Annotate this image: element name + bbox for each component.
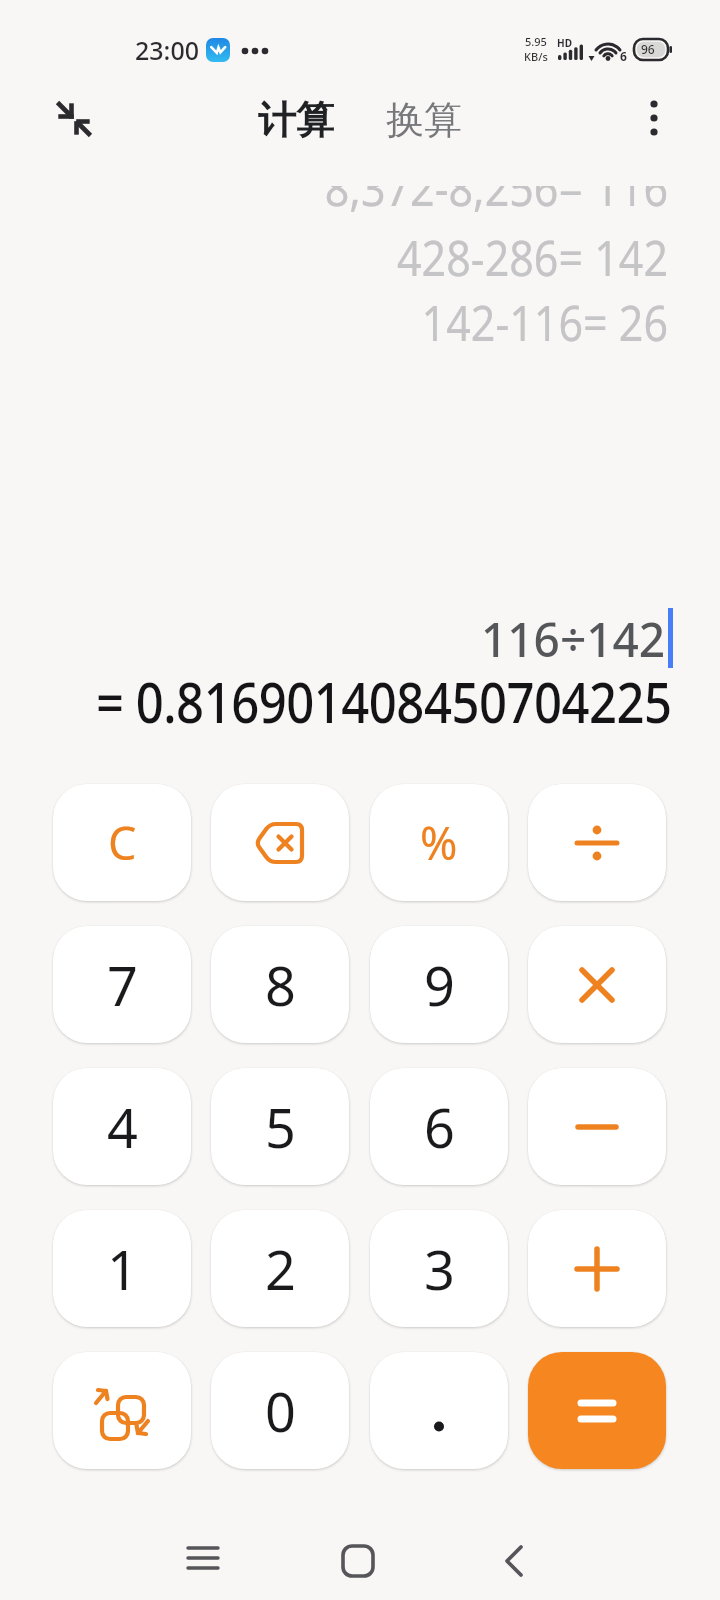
- button[interactable]: [528, 784, 666, 901]
- staticText: 142-116= 26: [421, 289, 668, 356]
- button[interactable]: 计算: [258, 96, 334, 140]
- staticText: 7: [107, 948, 138, 1022]
- button[interactable]: 9: [370, 926, 508, 1043]
- staticText: 428-286= 142: [397, 224, 668, 291]
- staticText: 1: [107, 1232, 138, 1306]
- button[interactable]: 8: [211, 926, 349, 1043]
- button[interactable]: [528, 926, 666, 1043]
- button[interactable]: 6: [370, 1068, 508, 1185]
- button[interactable]: [211, 784, 349, 901]
- button[interactable]: [338, 1542, 378, 1582]
- staticText: 116÷142: [481, 606, 666, 671]
- button[interactable]: [53, 1352, 191, 1469]
- staticText: 4: [107, 1090, 138, 1164]
- button[interactable]: [528, 1068, 666, 1185]
- staticText: %: [420, 812, 458, 873]
- staticText: 23:00: [135, 33, 200, 67]
- button[interactable]: [495, 1541, 535, 1581]
- button[interactable]: 1: [53, 1210, 191, 1327]
- staticText: 8: [265, 948, 296, 1022]
- button[interactable]: 4: [53, 1068, 191, 1185]
- staticText: 计算: [258, 96, 334, 140]
- button[interactable]: 换算: [386, 96, 462, 140]
- staticText: HD: [557, 36, 572, 50]
- staticText: 3: [424, 1232, 455, 1306]
- staticText: 6: [620, 48, 627, 64]
- staticText: C: [108, 812, 137, 873]
- button[interactable]: [183, 1538, 223, 1578]
- button[interactable]: [370, 1352, 508, 1469]
- staticText: 5.95: [525, 34, 547, 49]
- staticText: 8,372-8,256= 116: [324, 186, 668, 221]
- staticText: 6: [424, 1090, 455, 1164]
- button[interactable]: [50, 95, 102, 147]
- button[interactable]: 3: [370, 1210, 508, 1327]
- staticText: 9: [424, 948, 455, 1022]
- button[interactable]: 0: [211, 1352, 349, 1469]
- staticText: 0: [265, 1374, 296, 1448]
- button[interactable]: [638, 98, 674, 138]
- staticText: KB/s: [524, 49, 548, 64]
- staticText: 2: [265, 1232, 296, 1306]
- button[interactable]: 7: [53, 926, 191, 1043]
- button[interactable]: 2: [211, 1210, 349, 1327]
- button[interactable]: C: [53, 784, 191, 901]
- staticText: 换算: [386, 96, 462, 140]
- button[interactable]: [528, 1352, 666, 1469]
- staticText: 96: [641, 41, 655, 57]
- button[interactable]: [528, 1210, 666, 1327]
- button[interactable]: 5: [211, 1068, 349, 1185]
- staticText: = 0.816901408450704225: [96, 663, 672, 740]
- staticText: 5: [265, 1090, 296, 1164]
- button[interactable]: %: [370, 784, 508, 901]
